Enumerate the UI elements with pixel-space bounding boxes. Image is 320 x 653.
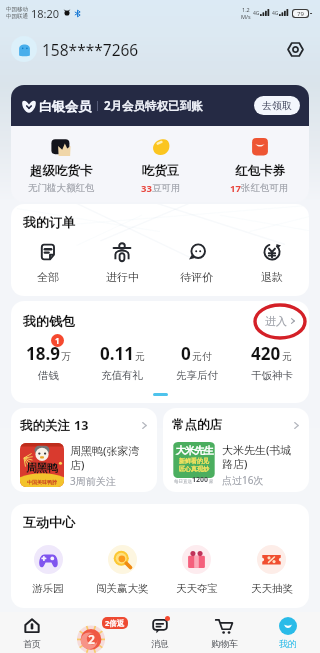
staticText: 2 <box>88 631 95 647</box>
button[interactable]: 红包卡券 <box>210 135 309 195</box>
button[interactable]: Avatar <box>11 36 37 62</box>
staticText: 中国美味鸭脖 <box>27 479 57 485</box>
staticText: 首页 <box>23 638 41 649</box>
staticText: 1 <box>55 335 60 346</box>
staticText: 张红包可用 <box>241 182 289 194</box>
staticText: 1200 <box>192 475 209 485</box>
staticText: 万 <box>61 350 71 363</box>
button[interactable]: 我的 <box>256 612 320 653</box>
button[interactable]: 全部 <box>11 242 85 284</box>
button[interactable]: Settings <box>283 37 307 61</box>
button[interactable]: 待评价 <box>159 242 234 284</box>
staticText: 1.2 <box>242 6 250 13</box>
staticText: 我的钱包 <box>23 313 75 329</box>
staticText: 周黑鸭(张家湾店) <box>70 443 149 472</box>
staticText: 4G <box>272 10 279 17</box>
button[interactable]: 我的关注 <box>11 408 157 492</box>
staticText: 闯关赢大奖 <box>96 582 149 595</box>
button[interactable]: 购物车 <box>192 612 256 653</box>
staticText: 进行中 <box>106 270 139 284</box>
button[interactable]: 0 <box>159 342 234 382</box>
staticText: 常点的店 <box>172 417 222 433</box>
staticText: 我的 <box>279 638 297 649</box>
button[interactable]: 闯关赢大奖 <box>85 545 159 595</box>
staticText: 周黑鸭 <box>26 461 58 475</box>
staticText: 家 <box>209 479 214 485</box>
button[interactable]: 首页 <box>0 612 64 653</box>
staticText: 全部 <box>37 270 59 284</box>
staticText: 游乐园 <box>32 582 64 595</box>
button[interactable]: 进行中 <box>85 242 159 284</box>
staticText: 元付 <box>192 350 212 363</box>
staticText: 0 <box>181 342 191 365</box>
staticText: 13 <box>74 417 89 434</box>
staticText: 消息 <box>151 638 169 649</box>
button[interactable]: 退款 <box>234 242 309 284</box>
staticText: 新鲜看的见 <box>179 457 209 465</box>
staticText: 待评价 <box>180 270 213 284</box>
staticText: 2月会员特权已到账 <box>104 98 203 114</box>
button[interactable]: 天天夺宝 <box>159 545 234 595</box>
staticText: 进入 <box>265 314 287 328</box>
staticText: 元 <box>135 350 145 363</box>
staticText: 先享后付 <box>176 369 218 382</box>
button[interactable]: 消息 <box>128 612 192 653</box>
staticText: 超级吃货卡 <box>30 163 93 179</box>
button[interactable]: 420 <box>234 342 309 382</box>
staticText: 红包卡券 <box>235 163 285 179</box>
staticText: 我的关注 <box>20 418 70 434</box>
staticText: 158****7266 <box>42 39 139 60</box>
staticText: 79 <box>297 10 304 17</box>
staticText: 2倍返 <box>105 618 125 628</box>
button[interactable]: 游乐园 <box>11 545 85 595</box>
staticText: 吃货豆 <box>142 163 180 179</box>
button[interactable]: 0.11 <box>85 342 159 382</box>
staticText: 退款 <box>261 270 283 284</box>
staticText: 大米先生 <box>176 444 213 457</box>
staticText: 白银会员 <box>39 98 91 114</box>
staticText: 豆可用 <box>152 182 181 194</box>
staticText: 我的订单 <box>23 214 75 230</box>
staticText: 33 <box>141 182 152 195</box>
staticText: 借钱 <box>38 369 59 382</box>
staticText: 大米先生(书城路店) <box>222 442 301 471</box>
staticText: M/s <box>241 13 251 20</box>
staticText: 中国联通 <box>6 13 28 20</box>
button[interactable]: 超级吃货卡 <box>11 135 111 194</box>
staticText: 17 <box>230 182 241 195</box>
button[interactable]: 天天抽奖 <box>234 545 309 595</box>
staticText: 4G <box>253 10 260 17</box>
staticText: 天天夺宝 <box>176 582 218 595</box>
button[interactable]: 去领取 <box>254 96 300 115</box>
staticText: 去领取 <box>262 99 292 112</box>
staticText: 匠心真现炒 <box>179 465 209 473</box>
staticText: 干饭神卡 <box>251 369 293 382</box>
staticText: 18:20 <box>31 6 60 21</box>
button[interactable]: 进入 <box>265 314 297 328</box>
staticText: 0.11 <box>100 342 134 365</box>
staticText: 充值有礼 <box>101 369 143 382</box>
staticText: 购物车 <box>211 638 238 649</box>
staticText: 3周前关注 <box>70 474 116 488</box>
staticText: 天天抽奖 <box>251 582 293 595</box>
staticText: 互动中心 <box>23 514 75 530</box>
staticText: 无门槛大额红包 <box>28 182 95 194</box>
button[interactable]: 白银会员 <box>11 85 309 126</box>
staticText: 420 <box>251 342 281 365</box>
staticText: 点过16次 <box>222 473 264 487</box>
staticText: 每日直送 <box>174 479 192 485</box>
button[interactable]: 常点的店 <box>163 408 309 492</box>
button[interactable]: 吃货豆 <box>111 135 210 195</box>
staticText: 18.9 <box>26 342 60 365</box>
button[interactable]: 2x Rebate <box>64 612 128 653</box>
button[interactable]: 18.9 <box>11 342 85 382</box>
staticText: 元 <box>282 350 292 363</box>
staticText: 中国移动 <box>6 6 28 13</box>
